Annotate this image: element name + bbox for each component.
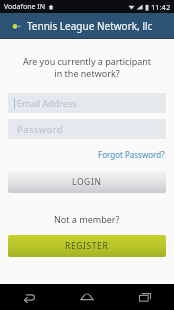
staticText: Email Address bbox=[17, 97, 77, 109]
staticText: Tennis League Network, llc bbox=[27, 19, 153, 33]
button[interactable]: Password bbox=[8, 119, 166, 139]
staticText: Password bbox=[17, 123, 64, 135]
button[interactable]: REGISTER bbox=[8, 235, 166, 257]
button[interactable]: Back bbox=[0, 284, 58, 310]
button[interactable]: Home bbox=[58, 284, 116, 310]
button[interactable]: Forgot Password? bbox=[89, 147, 174, 162]
staticText: Forgot Password? bbox=[98, 149, 165, 160]
staticText: LOGIN bbox=[72, 176, 102, 188]
button[interactable]: LOGIN bbox=[8, 171, 166, 193]
staticText: REGISTER bbox=[65, 240, 109, 252]
staticText: Are you currently a participant in the n… bbox=[22, 55, 152, 80]
staticText: Not a member? bbox=[54, 213, 120, 225]
staticText: Vodafone IN bbox=[4, 2, 45, 12]
staticText: 11:42 bbox=[151, 2, 171, 12]
button[interactable]: Email Address bbox=[8, 93, 166, 113]
button[interactable]: Recent apps bbox=[116, 284, 174, 310]
